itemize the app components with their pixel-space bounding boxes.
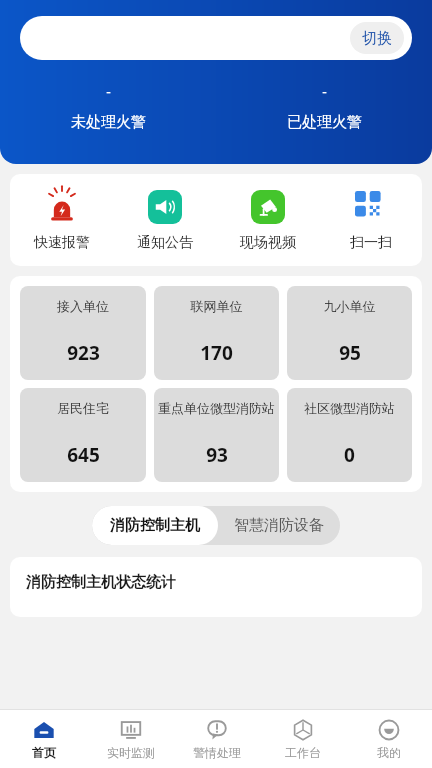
button[interactable]: 我的 bbox=[346, 710, 432, 768]
staticText: 未处理火警 bbox=[71, 113, 146, 132]
staticText: 智慧消防设备 bbox=[234, 516, 324, 535]
staticText: 快速报警 bbox=[34, 234, 90, 252]
button[interactable]: 智慧消防设备 bbox=[218, 506, 340, 545]
button[interactable]: 接入单位 bbox=[20, 286, 146, 380]
staticText: - bbox=[106, 82, 111, 101]
staticText: 居民住宅 bbox=[23, 400, 143, 416]
button[interactable]: 通知公告 bbox=[113, 188, 216, 252]
staticText: 首页 bbox=[32, 745, 56, 760]
button[interactable]: 警情处理 bbox=[174, 710, 260, 768]
button[interactable]: 快速报警 bbox=[10, 188, 113, 252]
button[interactable]: 实时监测 bbox=[87, 710, 174, 768]
button[interactable]: 首页 bbox=[0, 710, 87, 768]
staticText: 重点单位微型消防站 bbox=[157, 400, 276, 416]
staticText: 警情处理 bbox=[193, 745, 241, 760]
button[interactable]: 重点单位微型消防站 bbox=[154, 388, 279, 482]
staticText: 切换 bbox=[362, 29, 392, 48]
staticText: 我的 bbox=[377, 745, 401, 760]
button[interactable]: 工作台 bbox=[260, 710, 346, 768]
staticText: 实时监测 bbox=[107, 745, 155, 760]
button[interactable]: 切换 bbox=[350, 22, 404, 54]
button[interactable]: - bbox=[216, 82, 432, 132]
staticText: 通知公告 bbox=[137, 234, 193, 252]
staticText: 社区微型消防站 bbox=[290, 400, 409, 416]
staticText: 170 bbox=[200, 340, 233, 366]
button[interactable]: 消防控制主机 bbox=[92, 506, 218, 545]
button[interactable]: 切换 bbox=[20, 16, 412, 60]
staticText: 93 bbox=[206, 442, 228, 468]
button[interactable]: 扫一扫 bbox=[319, 188, 422, 252]
staticText: - bbox=[322, 82, 327, 101]
staticText: 工作台 bbox=[285, 745, 321, 760]
staticText: 九小单位 bbox=[290, 298, 409, 314]
staticText: 已处理火警 bbox=[287, 113, 362, 132]
staticText: 联网单位 bbox=[157, 298, 276, 314]
staticText: 现场视频 bbox=[240, 234, 296, 252]
button[interactable]: 社区微型消防站 bbox=[287, 388, 412, 482]
staticText: 接入单位 bbox=[23, 298, 143, 314]
staticText: 消防控制主机 bbox=[110, 516, 200, 535]
button[interactable]: 联网单位 bbox=[154, 286, 279, 380]
staticText: 645 bbox=[67, 442, 100, 468]
staticText: 923 bbox=[67, 340, 100, 366]
staticText: 消防控制主机状态统计 bbox=[26, 573, 176, 592]
button[interactable]: 九小单位 bbox=[287, 286, 412, 380]
staticText: 扫一扫 bbox=[350, 234, 392, 252]
button[interactable]: 居民住宅 bbox=[20, 388, 146, 482]
staticText: 0 bbox=[344, 442, 355, 468]
button[interactable]: 现场视频 bbox=[216, 188, 319, 252]
staticText: 95 bbox=[339, 340, 361, 366]
button[interactable]: - bbox=[0, 82, 216, 132]
